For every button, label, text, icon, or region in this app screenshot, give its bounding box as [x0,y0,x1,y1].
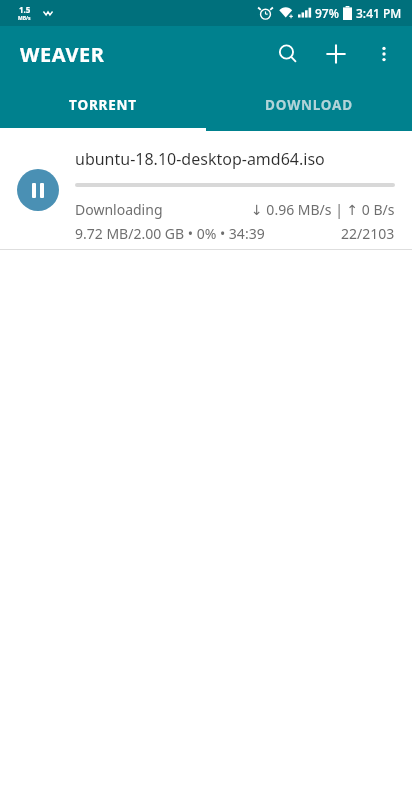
staticText: Downloading [75,200,163,219]
button[interactable]: Add torrent [312,30,360,78]
staticText: WEAVER [20,41,105,68]
staticText: ubuntu-18.10-desktop-amd64.iso [75,148,325,170]
staticText: DOWNLOAD [265,96,353,114]
staticText: ↓ 0.96 MB/s | ↑ 0 B/s [251,200,395,219]
staticText: 22/2103 [341,224,395,243]
staticText: MB/s [18,15,31,22]
staticText: TORRENT [69,96,137,114]
button[interactable]: DOWNLOAD [206,82,412,128]
button[interactable]: More options [360,30,408,78]
button[interactable]: Pause [17,169,59,211]
staticText: 3:41 PM [356,5,402,21]
staticText: 97% [315,5,339,21]
button[interactable]: Pause [0,131,412,249]
button[interactable]: TORRENT [0,82,206,128]
button[interactable]: Search [264,30,312,78]
staticText: 9.72 MB/2.00 GB • 0% • 34:39 [75,224,265,243]
staticText: 1.5 [19,4,31,15]
